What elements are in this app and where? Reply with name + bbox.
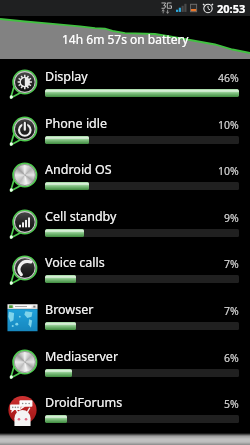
button[interactable]: DroidForums: [0, 385, 250, 432]
button[interactable]: Voice calls: [0, 245, 250, 292]
staticText: Browser: [45, 301, 94, 318]
staticText: 7%: [224, 257, 239, 271]
staticText: Voice calls: [45, 254, 105, 271]
staticText: Phone idle: [45, 115, 108, 132]
staticText: 20:53: [217, 1, 246, 16]
staticText: 7%: [224, 304, 239, 318]
staticText: Mediaserver: [45, 348, 119, 365]
staticText: Cell standby: [45, 208, 117, 225]
staticText: 5%: [224, 397, 239, 411]
button[interactable]: Mediaserver: [0, 339, 250, 386]
staticText: 10%: [218, 118, 239, 132]
staticText: 10%: [218, 164, 239, 178]
staticText: Display: [45, 68, 88, 85]
staticText: 9%: [224, 211, 239, 225]
staticText: 6%: [224, 351, 239, 365]
button[interactable]: Display: [0, 59, 250, 106]
button[interactable]: Cell standby: [0, 199, 250, 246]
button[interactable]: Browser: [0, 292, 250, 339]
button[interactable]: Phone idle: [0, 106, 250, 153]
staticText: 46%: [218, 71, 239, 85]
staticText: Android OS: [45, 161, 112, 178]
staticText: 14h 6m 57s on battery: [62, 31, 189, 47]
button[interactable]: Android OS: [0, 152, 250, 199]
staticText: DroidForums: [45, 394, 123, 411]
